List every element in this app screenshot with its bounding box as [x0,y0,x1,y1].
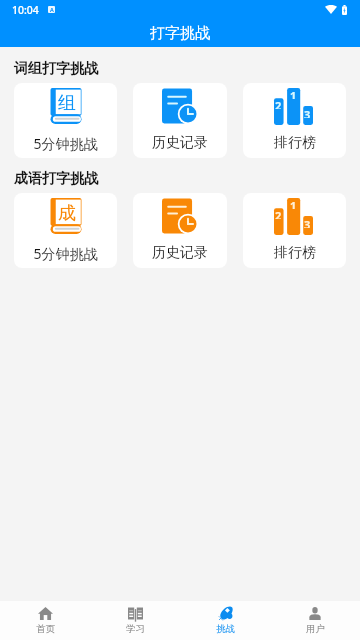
staticText: 挑战 [216,623,235,635]
staticText: 词组打字挑战 [14,60,98,78]
staticText: 3 [304,217,311,228]
button[interactable]: 挑战 [180,601,270,640]
button[interactable]: 用户 [270,601,360,640]
button[interactable]: 首页 [0,601,90,640]
staticText: 10:04 [12,3,39,17]
staticText: 2 [275,208,282,219]
staticText: 排行榜 [274,244,316,262]
staticText: 历史记录 [152,134,208,152]
staticText: 成语打字挑战 [14,170,98,188]
staticText: 首页 [36,623,55,635]
staticText: 3 [304,107,311,118]
staticText: 用户 [306,623,325,635]
button[interactable]: 历史记录 [133,83,227,158]
button[interactable]: 成 [14,193,117,268]
button[interactable]: 2 [243,83,346,158]
staticText: 组 [58,92,76,112]
staticText: A [50,6,54,13]
button[interactable]: 历史记录 [133,193,227,268]
staticText: 5分钟挑战 [33,134,98,153]
staticText: 打字挑战 [150,24,210,43]
staticText: 1 [290,88,297,99]
staticText: 5分钟挑战 [33,244,98,263]
staticText: 学习 [126,623,145,635]
staticText: 1 [290,198,297,209]
staticText: 排行榜 [274,134,316,152]
staticText: 2 [275,98,282,109]
button[interactable]: 2 [243,193,346,268]
button[interactable]: 学习 [90,601,180,640]
staticText: 成 [58,202,76,222]
button[interactable]: 组 [14,83,117,158]
staticText: 历史记录 [152,244,208,262]
